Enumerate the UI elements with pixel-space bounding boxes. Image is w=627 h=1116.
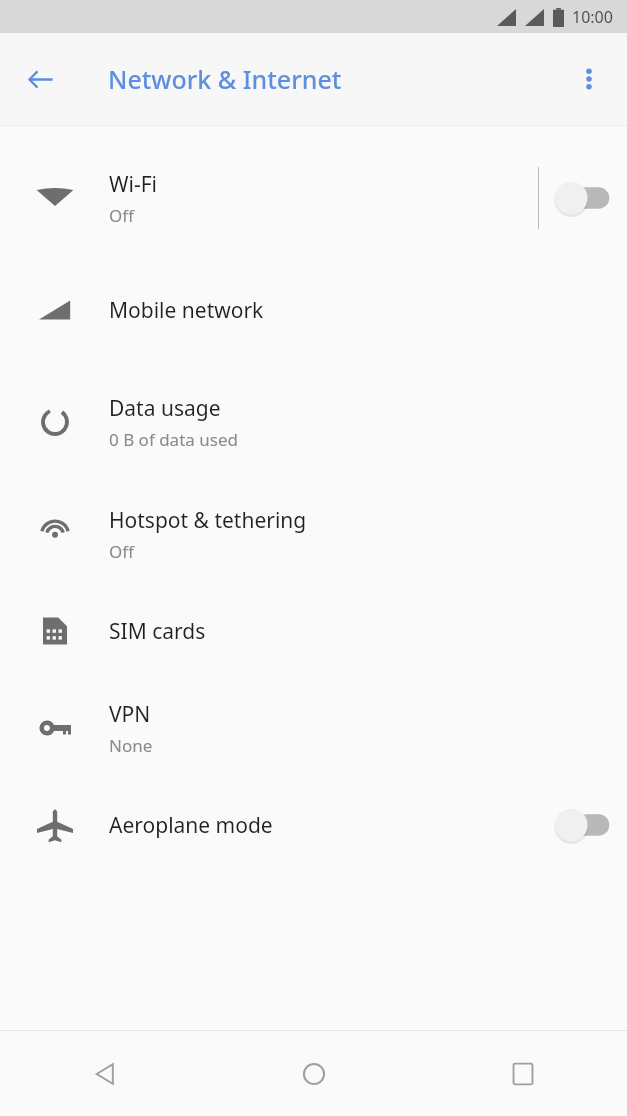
staticText: SIM cards bbox=[109, 617, 206, 646]
staticText: 0 B of data used bbox=[109, 428, 238, 451]
button[interactable]: Hotspot & tethering bbox=[0, 478, 627, 590]
staticText: Aeroplane mode bbox=[109, 811, 273, 840]
button[interactable]: Recents bbox=[418, 1031, 627, 1116]
button[interactable]: Data usage bbox=[0, 366, 627, 478]
button[interactable]: Aeroplane mode bbox=[0, 784, 627, 866]
staticText: Wi-Fi bbox=[109, 170, 158, 199]
staticText: None bbox=[109, 734, 153, 757]
button[interactable]: Wi-Fi bbox=[0, 142, 627, 254]
staticText: Mobile network bbox=[109, 296, 264, 325]
button[interactable]: More options bbox=[563, 53, 615, 105]
button[interactable]: Mobile network bbox=[0, 254, 627, 366]
staticText: VPN bbox=[109, 700, 151, 729]
staticText: Hotspot & tethering bbox=[109, 506, 307, 535]
button[interactable]: Aeroplane mode toggle bbox=[539, 790, 627, 860]
button[interactable]: Back bbox=[0, 1031, 209, 1116]
staticText: Off bbox=[109, 540, 134, 563]
staticText: Network & Internet bbox=[108, 62, 342, 96]
button[interactable]: VPN bbox=[0, 672, 627, 784]
button[interactable]: Back bbox=[14, 53, 66, 105]
button[interactable]: SIM cards bbox=[0, 590, 627, 672]
button[interactable]: Wi-Fi toggle bbox=[539, 163, 627, 233]
staticText: Off bbox=[109, 204, 134, 227]
button[interactable]: Home bbox=[209, 1031, 418, 1116]
staticText: Data usage bbox=[109, 394, 221, 423]
staticText: 10:00 bbox=[572, 6, 613, 28]
